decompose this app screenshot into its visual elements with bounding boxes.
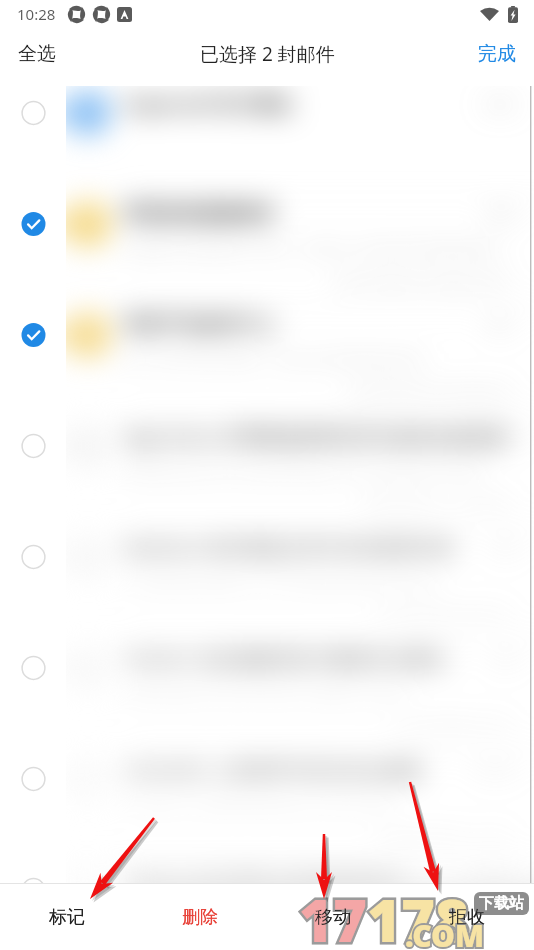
button[interactable]: 网 [66, 197, 534, 308]
staticText: 拒收 [449, 906, 485, 929]
button[interactable]: G [66, 863, 534, 883]
button[interactable]: 删除 [133, 884, 266, 950]
staticText: Medium 每日精选文章与专栏推荐内容 [124, 535, 454, 561]
staticText: 10:28 [17, 4, 56, 24]
staticText: GitHub 安全通知与依赖更新提示 [124, 868, 405, 883]
staticText: 立即前往仓库设置 [392, 863, 512, 867]
button[interactable]: M [66, 530, 534, 641]
staticText: 已选择 2 封邮件 [200, 41, 335, 67]
staticText: .COM [405, 915, 484, 950]
staticText: .COM [405, 915, 484, 950]
staticText: 下载站 [479, 894, 524, 913]
staticText: Twitter 动态提醒消息与最新互动通知 [124, 646, 445, 672]
staticText: 全选 [18, 42, 56, 66]
button[interactable]: 全选 [0, 30, 74, 86]
button[interactable]: 网 [66, 308, 534, 419]
button[interactable]: T [66, 641, 534, 752]
staticText: 完成 [478, 42, 516, 66]
staticText: LinkedIn 人脉推荐与职位机会提醒 [124, 757, 422, 783]
staticText: 网 [79, 323, 98, 347]
button[interactable]: 标记 [0, 884, 133, 950]
staticText: 网易严选福利中心 [124, 313, 276, 337]
button[interactable]: 移动 [266, 884, 400, 950]
staticText: 查看推荐联系人列表 [377, 828, 512, 847]
staticText: 标记 [49, 906, 85, 929]
staticText: 移动 [315, 906, 351, 929]
button[interactable]: 拒收 [400, 884, 534, 950]
staticText: 移动 [315, 906, 351, 929]
staticText: 178 [367, 880, 469, 950]
staticText: 拒收 [449, 906, 485, 929]
staticText: S [83, 100, 94, 126]
staticText: Supercell 官方通知 [124, 91, 292, 117]
staticText: App Store 本周精选推荐应用与游戏合集更新 [124, 424, 507, 450]
staticText: 网易邮箱提醒服务 [124, 202, 276, 226]
button[interactable]: A [66, 419, 534, 530]
button[interactable]: L [66, 752, 534, 863]
staticText: 标记 [49, 906, 85, 929]
button[interactable]: 完成 [460, 30, 534, 86]
button[interactable]: S [66, 86, 534, 197]
staticText: 网 [79, 212, 98, 236]
staticText: 删除 [182, 906, 218, 929]
staticText: 删除 [182, 906, 218, 929]
staticText: 17178 [299, 880, 469, 950]
staticText: 17 [299, 880, 367, 950]
